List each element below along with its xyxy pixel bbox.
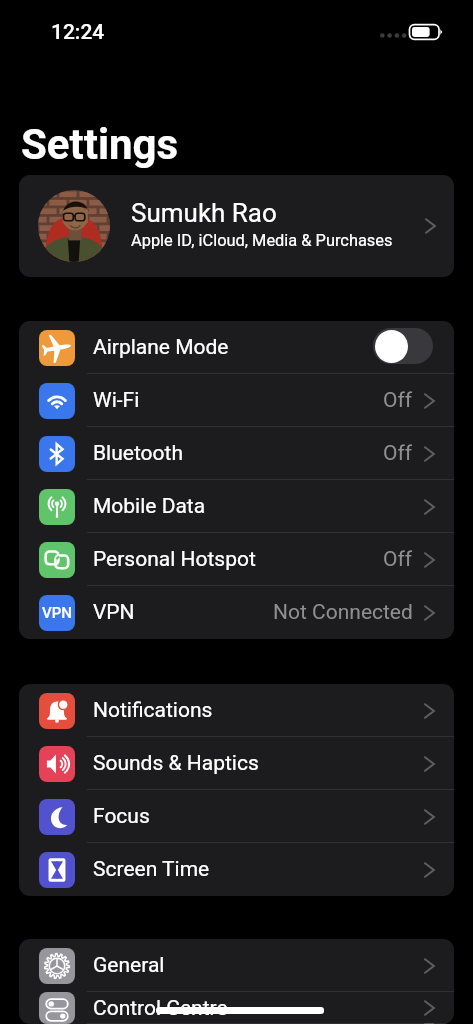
staticText: Apple ID, iCloud, Media & Purchases (131, 231, 393, 250)
staticText: Wi-Fi (93, 388, 140, 413)
button[interactable]: Screen Time (19, 843, 454, 896)
staticText: VPN (93, 600, 135, 625)
button[interactable]: Bluetooth (19, 427, 454, 480)
button[interactable]: VPN (19, 586, 454, 639)
staticText: Screen Time (93, 857, 210, 882)
staticText: 12:24 (51, 20, 105, 45)
button[interactable]: Sumukh Rao (19, 175, 454, 277)
staticText: Sumukh Rao (131, 198, 277, 228)
staticText: Bluetooth (93, 441, 183, 466)
staticText: Sounds & Haptics (93, 751, 259, 776)
staticText: Notifications (93, 698, 213, 723)
button[interactable]: Control Centre (19, 992, 454, 1024)
staticText: Control Centre (93, 996, 228, 1021)
button[interactable]: Airplane Mode toggle, off (373, 328, 433, 364)
button[interactable]: Sounds & Haptics (19, 737, 454, 790)
button[interactable]: General (19, 939, 454, 992)
button[interactable]: Mobile Data (19, 480, 454, 533)
button[interactable]: Airplane Mode (19, 321, 454, 374)
button[interactable]: Notifications (19, 684, 454, 737)
staticText: Airplane Mode (93, 335, 229, 360)
staticText: VPN (42, 604, 72, 622)
button[interactable]: Wi-Fi (19, 374, 454, 427)
staticText: Personal Hotspot (93, 547, 256, 572)
button[interactable]: Focus (19, 790, 454, 843)
staticText: Off (383, 388, 413, 413)
staticText: Focus (93, 804, 150, 829)
staticText: Off (383, 547, 413, 572)
staticText: Settings (21, 120, 179, 169)
staticText: General (93, 953, 165, 978)
button[interactable]: Personal Hotspot (19, 533, 454, 586)
staticText: Not Connected (273, 600, 413, 625)
staticText: Off (383, 441, 413, 466)
staticText: Mobile Data (93, 494, 206, 519)
